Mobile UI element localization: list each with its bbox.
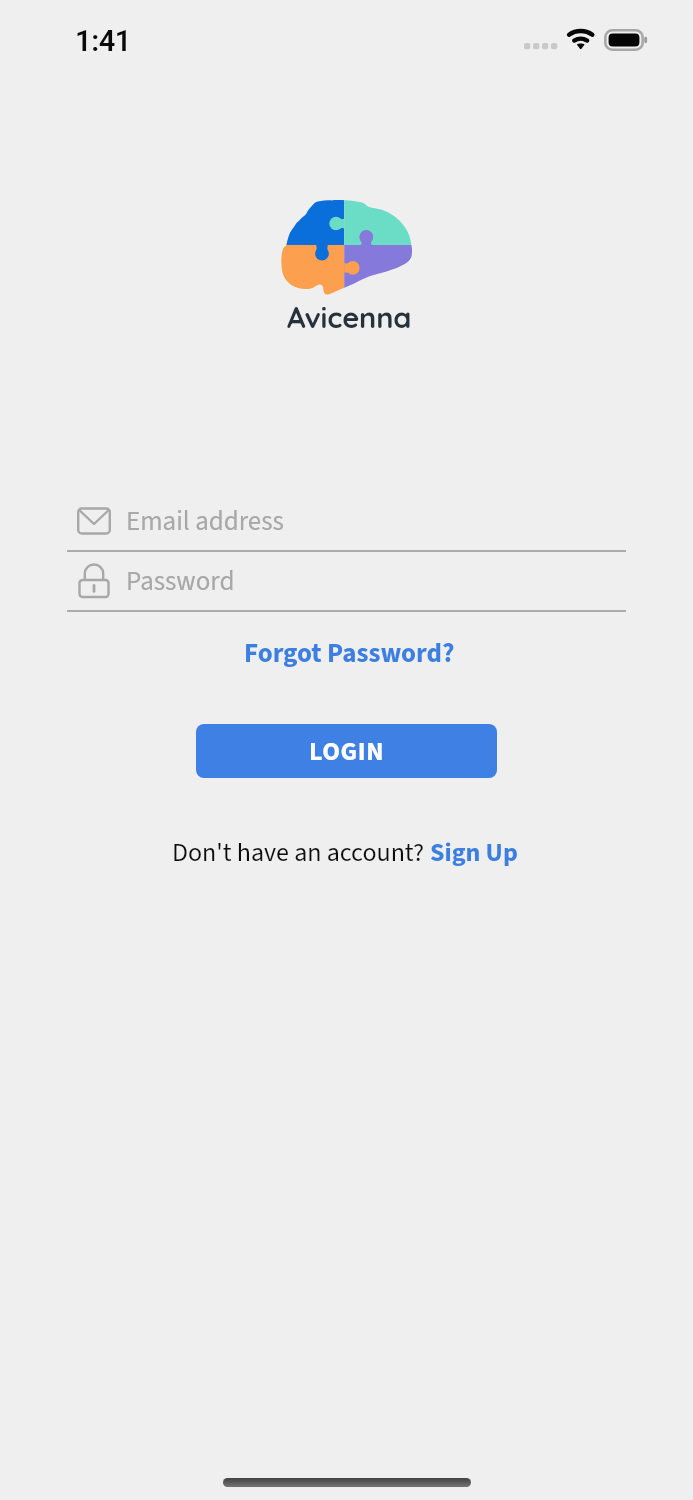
button[interactable]: Forgot Password? (234, 630, 465, 676)
button[interactable]: LOGIN (196, 724, 497, 778)
staticText: Avicenna (287, 299, 412, 335)
staticText: Don't have an account? (172, 834, 430, 871)
button[interactable]: Don't have an account? (164, 830, 526, 875)
staticText: LOGIN (309, 733, 385, 770)
staticText: Email address (126, 502, 284, 540)
button[interactable]: Email (67, 491, 626, 550)
staticText: Forgot Password? (244, 634, 455, 672)
other: Password (77, 564, 111, 598)
staticText: 1:41 (75, 24, 132, 58)
button[interactable]: Password (67, 552, 626, 610)
other: Email (77, 504, 111, 538)
staticText: Password (126, 562, 235, 600)
staticText: Sign Up (430, 834, 518, 871)
